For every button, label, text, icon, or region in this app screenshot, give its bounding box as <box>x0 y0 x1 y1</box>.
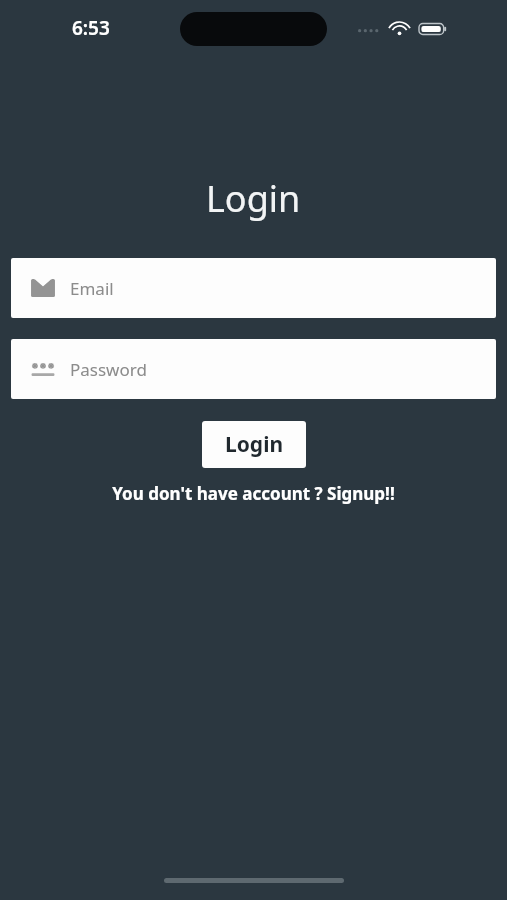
staticText: Email <box>70 277 114 300</box>
button[interactable]: You don't have account ? Signup!! <box>104 478 403 509</box>
button[interactable]: Email <box>11 258 496 318</box>
other: Password <box>30 356 56 382</box>
other: Email <box>30 275 56 301</box>
staticText: Login <box>206 174 301 223</box>
staticText: 6:53 <box>72 15 110 41</box>
button[interactable]: Login <box>202 421 306 468</box>
button[interactable]: Password <box>11 339 496 399</box>
staticText: You don't have account ? Signup!! <box>112 482 395 505</box>
staticText: Login <box>225 430 284 459</box>
staticText: Password <box>70 358 147 381</box>
